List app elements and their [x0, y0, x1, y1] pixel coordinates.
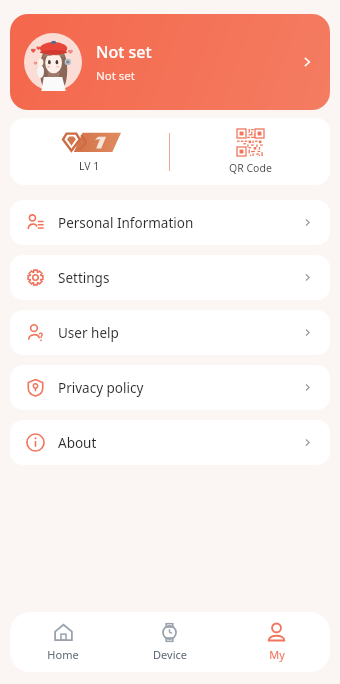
button[interactable]: Home	[10, 612, 116, 672]
staticText: My	[269, 647, 285, 662]
staticText: LV 1	[79, 159, 100, 173]
button[interactable]: Device	[116, 612, 223, 672]
button[interactable]: LV 1	[10, 118, 169, 185]
staticText: About	[58, 434, 301, 452]
staticText: Not set	[96, 41, 152, 63]
button[interactable]: Privacy policy	[10, 365, 330, 410]
button[interactable]: My	[223, 612, 330, 672]
staticText: QR Code	[229, 161, 272, 175]
button[interactable]: About	[10, 420, 330, 465]
staticText: User help	[58, 324, 301, 342]
staticText: Device	[153, 647, 187, 662]
staticText: Privacy policy	[58, 379, 301, 397]
staticText: Personal Information	[58, 214, 301, 232]
button[interactable]: Personal Information	[10, 200, 330, 245]
button[interactable]: Settings	[10, 255, 330, 300]
staticText: Home	[47, 647, 79, 662]
button[interactable]: User help	[10, 310, 330, 355]
staticText: Not set	[96, 68, 135, 84]
staticText: Settings	[58, 269, 301, 287]
button[interactable]: QR Code	[170, 118, 330, 185]
button[interactable]: Not set	[10, 14, 330, 110]
